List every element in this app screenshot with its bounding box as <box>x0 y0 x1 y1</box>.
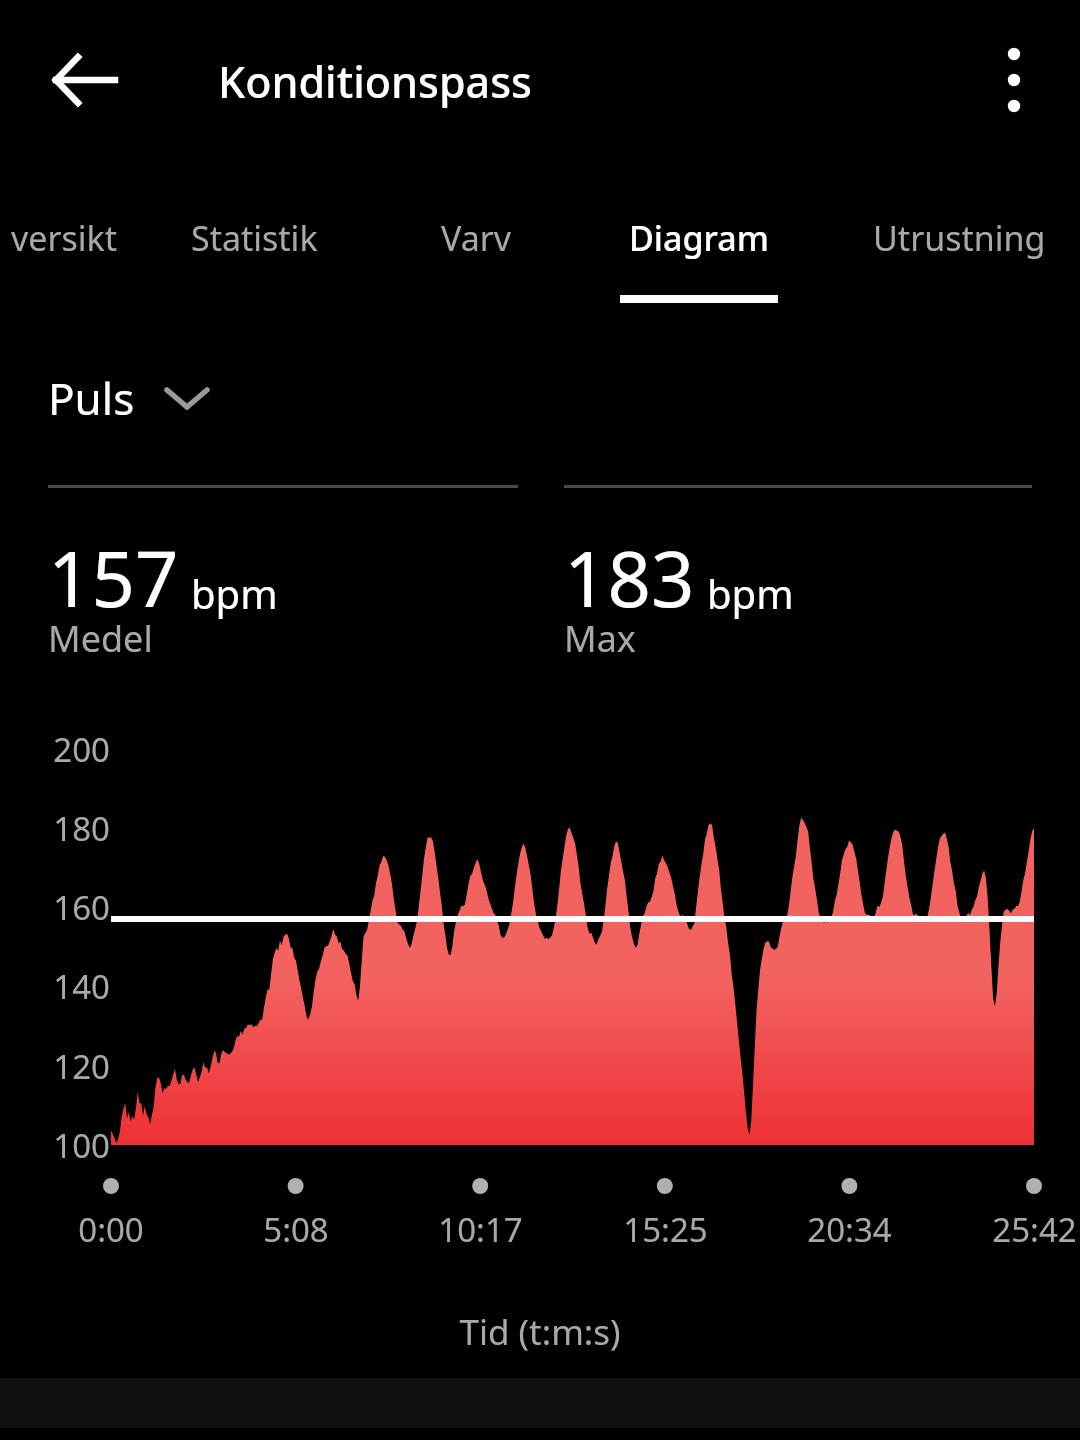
staticText: 5:08 <box>263 1207 329 1252</box>
button[interactable]: Back <box>40 36 130 124</box>
staticText: Statistik <box>191 215 318 261</box>
staticText: 160 <box>53 885 110 929</box>
staticText: 183 <box>564 526 695 630</box>
button[interactable]: versikt <box>0 205 152 271</box>
staticText: 140 <box>53 964 110 1008</box>
staticText: Konditionspass <box>218 52 532 111</box>
button[interactable]: More options <box>970 36 1058 124</box>
button[interactable]: Utrustning <box>838 205 1080 271</box>
staticText: 20:34 <box>807 1207 892 1252</box>
staticText: 180 <box>53 806 110 850</box>
staticText: Varv <box>441 215 512 261</box>
staticText: 0:00 <box>78 1207 144 1252</box>
staticText: Tid (t:m:s) <box>459 1308 621 1356</box>
staticText: Medel <box>48 614 153 663</box>
staticText: bpm <box>191 566 278 620</box>
staticText: bpm <box>707 566 794 620</box>
button[interactable]: Statistik <box>152 205 356 271</box>
staticText: 10:17 <box>438 1207 523 1252</box>
staticText: Puls <box>48 368 135 428</box>
staticText: Max <box>564 614 636 663</box>
staticText: 15:25 <box>623 1207 708 1252</box>
staticText: 25:42 <box>992 1207 1077 1252</box>
staticText: 100 <box>53 1123 110 1167</box>
staticText: Utrustning <box>873 215 1046 261</box>
button[interactable]: Varv <box>396 205 556 271</box>
button[interactable]: Puls <box>44 362 274 434</box>
button[interactable]: Diagram <box>586 205 812 271</box>
staticText: 200 <box>53 727 110 771</box>
staticText: Diagram <box>629 215 769 261</box>
staticText: 120 <box>53 1044 110 1088</box>
staticText: 157 <box>48 526 179 630</box>
staticText: versikt <box>11 215 117 261</box>
